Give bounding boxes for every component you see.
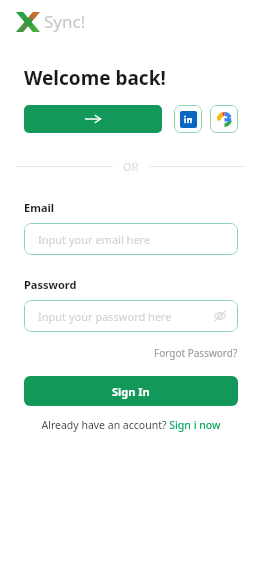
staticText: Input your email here [38, 232, 151, 247]
staticText: Welcome back! [24, 65, 166, 91]
button[interactable]: Sign in with LinkedIn [174, 105, 202, 133]
button[interactable]: Sign In [24, 376, 238, 406]
button[interactable]: Sync! [16, 10, 86, 33]
staticText: Already have an account? Sign i now [41, 418, 221, 432]
button[interactable]: Forgot Password? [154, 346, 238, 360]
button[interactable]: Input your password here [24, 300, 238, 332]
button[interactable]: Input your email here [24, 223, 238, 255]
button[interactable]: Show password [210, 306, 230, 326]
staticText: Sync! [44, 10, 86, 33]
button[interactable]: Already have an account? Sign i now [0, 418, 262, 432]
staticText: OR [123, 159, 139, 174]
staticText: Input your password here [38, 309, 172, 324]
staticText: Email [24, 200, 55, 215]
staticText: Password [24, 277, 77, 292]
staticText: Sign In [112, 384, 150, 399]
button[interactable]: Sign in with Google [210, 105, 238, 133]
button[interactable]: Continue [24, 105, 162, 133]
